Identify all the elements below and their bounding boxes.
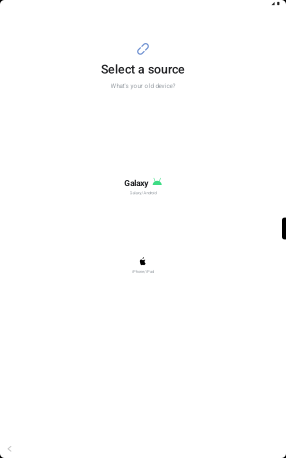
staticText: Galaxy/Android xyxy=(129,190,156,195)
button[interactable]: Back xyxy=(2,440,17,457)
button[interactable]: Galaxy or Android xyxy=(110,173,176,200)
staticText: Galaxy xyxy=(124,178,148,188)
staticText: iPhone/iPad xyxy=(132,269,154,274)
button[interactable]: iPhone or iPad xyxy=(118,252,168,279)
staticText: Select a source xyxy=(101,62,185,76)
staticText: What's your old device? xyxy=(110,82,175,89)
